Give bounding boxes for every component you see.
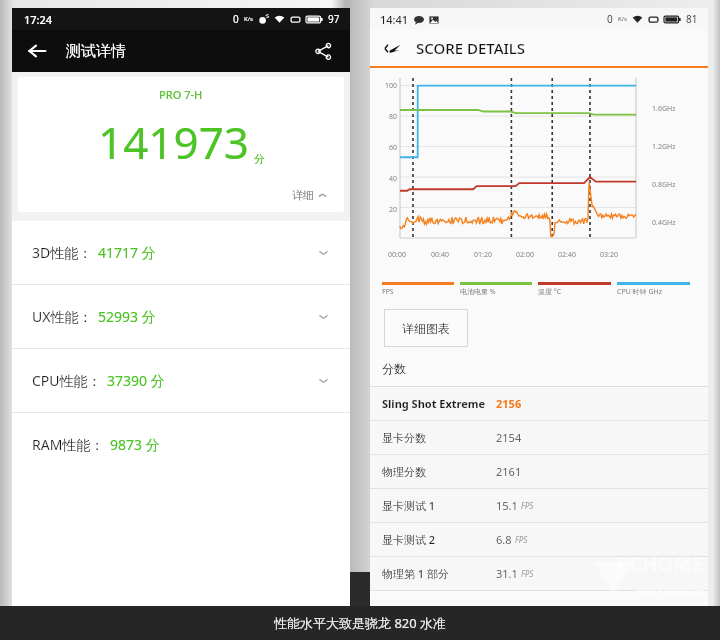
button[interactable]: Back xyxy=(20,34,54,68)
staticText: 00:00 xyxy=(388,250,406,260)
button[interactable]: 物理分数 xyxy=(370,455,708,488)
staticText: 分 xyxy=(254,152,265,166)
staticText: 97 xyxy=(328,12,340,26)
staticText: PRO 7-H xyxy=(159,87,203,102)
button[interactable]: 详细 xyxy=(288,184,332,206)
staticText: 3D性能： xyxy=(32,243,93,262)
staticText: UX性能： xyxy=(32,307,93,326)
staticText: 物理分数 xyxy=(382,465,426,479)
staticText: 1.6GHz xyxy=(652,104,676,114)
staticText: 测试详情 xyxy=(66,42,126,61)
staticText: 14:41 xyxy=(380,12,409,27)
button[interactable]: Back xyxy=(380,36,405,61)
staticText: 60 xyxy=(389,143,398,153)
button[interactable]: 显卡分数 xyxy=(370,421,708,454)
staticText: 0 xyxy=(607,12,613,26)
staticText: Sling Shot Extreme xyxy=(382,396,486,411)
staticText: 2156 xyxy=(496,396,522,411)
staticText: FPS xyxy=(521,568,534,579)
button[interactable]: 显卡测试 1 xyxy=(370,489,708,522)
staticText: 2161 xyxy=(496,464,522,479)
staticText: 41717 分 xyxy=(98,243,156,262)
button[interactable]: CPU性能： xyxy=(12,349,350,412)
staticText: 电池电量 % xyxy=(460,287,496,297)
staticText: 141973 xyxy=(98,112,250,172)
staticText: 0.8GHz xyxy=(652,180,676,190)
staticText: CPU 时钟 GHz xyxy=(617,287,662,297)
button[interactable]: 详细图表 xyxy=(384,309,468,347)
staticText: 详细 xyxy=(292,188,314,202)
staticText: 02:40 xyxy=(558,250,576,260)
staticText: 详细图表 xyxy=(402,321,450,336)
staticText: K/s xyxy=(618,15,627,23)
staticText: 20 xyxy=(389,205,398,215)
staticText: 01:20 xyxy=(474,250,492,260)
staticText: 52993 分 xyxy=(98,307,156,326)
staticText: 17:24 xyxy=(24,12,53,27)
staticText: 6.8 xyxy=(496,532,512,547)
staticText: 80 xyxy=(389,112,398,122)
staticText: CPU性能： xyxy=(32,371,102,390)
staticText: 物理第 1 部分 xyxy=(382,566,450,581)
staticText: 温度 °C xyxy=(538,287,562,297)
staticText: 显卡测试 2 xyxy=(382,532,436,547)
staticText: PCHOME xyxy=(617,550,704,577)
staticText: 81 xyxy=(686,12,698,26)
staticText: 0 xyxy=(233,12,239,26)
staticText: SCORE DETAILS xyxy=(416,38,526,58)
button[interactable]: 物理第 1 部分 xyxy=(370,557,708,590)
staticText: RAM性能： xyxy=(32,435,105,454)
staticText: 40 xyxy=(389,174,398,184)
staticText: 15.1 xyxy=(496,498,518,513)
staticText: 31.1 xyxy=(496,566,518,581)
staticText: 37390 分 xyxy=(107,371,165,390)
button[interactable]: RAM性能： xyxy=(12,413,350,476)
staticText: 00:40 xyxy=(431,250,449,260)
staticText: 9873 分 xyxy=(110,435,160,454)
staticText: 0.4GHz xyxy=(652,218,676,228)
staticText: FPS xyxy=(521,500,534,511)
button[interactable]: UX性能： xyxy=(12,285,350,348)
staticText: FPS xyxy=(515,534,528,545)
staticText: 2154 xyxy=(496,430,522,445)
staticText: 分数 xyxy=(382,361,406,376)
staticText: 显卡测试 1 xyxy=(382,498,436,513)
staticText: 性能水平大致是骁龙 820 水准 xyxy=(274,614,447,632)
button[interactable]: Sling Shot Extreme xyxy=(370,387,708,420)
button[interactable]: Share xyxy=(306,34,340,68)
staticText: K/s xyxy=(244,15,253,23)
staticText: FPS xyxy=(382,287,394,297)
staticText: 1.2GHz xyxy=(652,142,676,152)
button[interactable]: 3D性能： xyxy=(12,221,350,284)
staticText: 显卡分数 xyxy=(382,431,426,445)
button[interactable]: 显卡测试 2 xyxy=(370,523,708,556)
staticText: 100 xyxy=(385,81,398,91)
button[interactable]: PRO 7-H xyxy=(18,77,344,212)
staticText: 03:20 xyxy=(600,250,618,260)
staticText: WWW.PCHOME.NET xyxy=(636,588,704,598)
staticText: 02:00 xyxy=(516,250,534,260)
